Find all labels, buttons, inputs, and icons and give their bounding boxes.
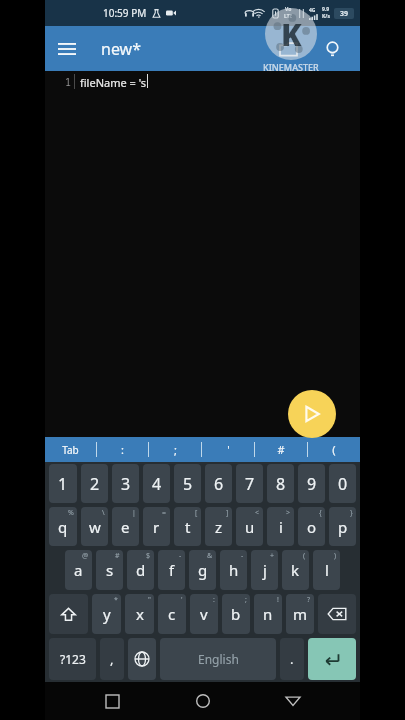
button[interactable]: Menu <box>45 27 89 71</box>
staticText: Tab <box>62 443 79 457</box>
button[interactable]: d <box>127 550 154 590</box>
staticText: w <box>89 517 101 537</box>
staticText: f <box>169 560 175 580</box>
button[interactable]: Backspace <box>318 594 356 634</box>
button[interactable]: q <box>49 507 77 546</box>
button[interactable]: p <box>329 507 356 546</box>
button[interactable]: k <box>282 550 309 590</box>
staticText: # <box>277 442 285 457</box>
staticText: v <box>200 604 208 624</box>
button[interactable]: # <box>255 437 307 462</box>
button[interactable]: Home <box>180 682 226 720</box>
staticText: { <box>319 508 322 518</box>
button[interactable]: a <box>65 550 92 590</box>
button[interactable]: English <box>160 638 276 680</box>
staticText: " <box>148 595 151 605</box>
staticText: ' <box>227 442 230 457</box>
button[interactable]: , <box>100 638 124 680</box>
staticText: s <box>106 560 114 580</box>
button[interactable]: z <box>205 507 232 546</box>
staticText: y <box>103 604 111 624</box>
button[interactable]: Recent apps <box>89 682 135 720</box>
staticText: 2 <box>90 473 100 495</box>
button[interactable]: 2 <box>81 464 108 503</box>
staticText: 0 <box>338 473 348 495</box>
button[interactable]: ; <box>149 437 201 462</box>
button[interactable]: 0 <box>329 464 356 503</box>
button[interactable]: o <box>298 507 325 546</box>
button[interactable]: 5 <box>174 464 201 503</box>
staticText: - <box>179 551 182 561</box>
staticText: LTE <box>284 13 293 20</box>
button[interactable]: 9 <box>298 464 325 503</box>
staticText: ( <box>303 551 306 561</box>
staticText: | <box>132 508 136 518</box>
staticText: x <box>136 604 144 624</box>
staticText: + <box>270 551 275 561</box>
button[interactable]: f <box>158 550 185 590</box>
button[interactable]: g <box>189 550 216 590</box>
staticText: , <box>110 650 114 668</box>
button[interactable]: Shift <box>49 594 88 634</box>
staticText: $ <box>146 551 151 561</box>
button[interactable]: 7 <box>236 464 263 503</box>
staticText: j <box>263 560 267 580</box>
button[interactable]: 6 <box>205 464 232 503</box>
staticText: 10:59 PM <box>103 6 147 20</box>
button[interactable]: Hints <box>310 27 354 71</box>
button[interactable]: j <box>251 550 278 590</box>
button[interactable]: w <box>81 507 108 546</box>
staticText: o <box>307 517 317 537</box>
staticText: ) <box>334 551 337 561</box>
button[interactable]: Tab <box>45 437 96 462</box>
button[interactable]: Run <box>288 390 336 438</box>
staticText: h <box>229 560 239 580</box>
button[interactable]: . <box>280 638 304 680</box>
button[interactable]: i <box>267 507 294 546</box>
button[interactable]: Open file <box>266 27 310 71</box>
button[interactable]: m <box>286 594 314 634</box>
staticText: 9 <box>307 473 317 495</box>
button[interactable]: ' <box>202 437 254 462</box>
staticText: e <box>121 517 130 537</box>
button[interactable]: ( <box>308 437 360 462</box>
staticText: 9.9 <box>322 6 330 13</box>
button[interactable]: u <box>236 507 263 546</box>
staticText: 6 <box>214 473 224 495</box>
staticText: m <box>293 604 308 624</box>
button[interactable]: 8 <box>267 464 294 503</box>
staticText: new* <box>101 38 141 60</box>
staticText: 39 <box>340 9 349 19</box>
staticText: ?123 <box>60 651 86 667</box>
button[interactable]: y <box>92 594 121 634</box>
button[interactable]: 1 <box>49 464 77 503</box>
button[interactable]: s <box>96 550 123 590</box>
button[interactable]: e <box>112 507 139 546</box>
button[interactable]: l <box>313 550 340 590</box>
staticText: ; <box>245 595 247 605</box>
button[interactable]: Back <box>270 682 316 720</box>
button[interactable]: c <box>158 594 186 634</box>
staticText: 1 <box>65 75 71 89</box>
button[interactable]: Change language <box>128 638 156 680</box>
staticText: 4G <box>309 7 316 14</box>
button[interactable]: x <box>125 594 154 634</box>
staticText: > <box>286 508 291 518</box>
staticText: * <box>114 595 118 605</box>
button[interactable]: 4 <box>143 464 170 503</box>
staticText: b <box>231 604 241 624</box>
button[interactable]: t <box>174 507 201 546</box>
button[interactable]: 3 <box>112 464 139 503</box>
button[interactable]: Enter <box>308 638 356 680</box>
button[interactable]: b <box>222 594 250 634</box>
button[interactable]: n <box>254 594 282 634</box>
staticText: g <box>198 560 208 580</box>
button[interactable]: h <box>220 550 247 590</box>
button[interactable]: ?123 <box>49 638 96 680</box>
staticText: t <box>185 517 191 537</box>
button[interactable]: v <box>190 594 218 634</box>
staticText: ] <box>226 508 229 518</box>
button[interactable]: : <box>97 437 148 462</box>
staticText: a <box>74 560 83 580</box>
button[interactable]: r <box>143 507 170 546</box>
